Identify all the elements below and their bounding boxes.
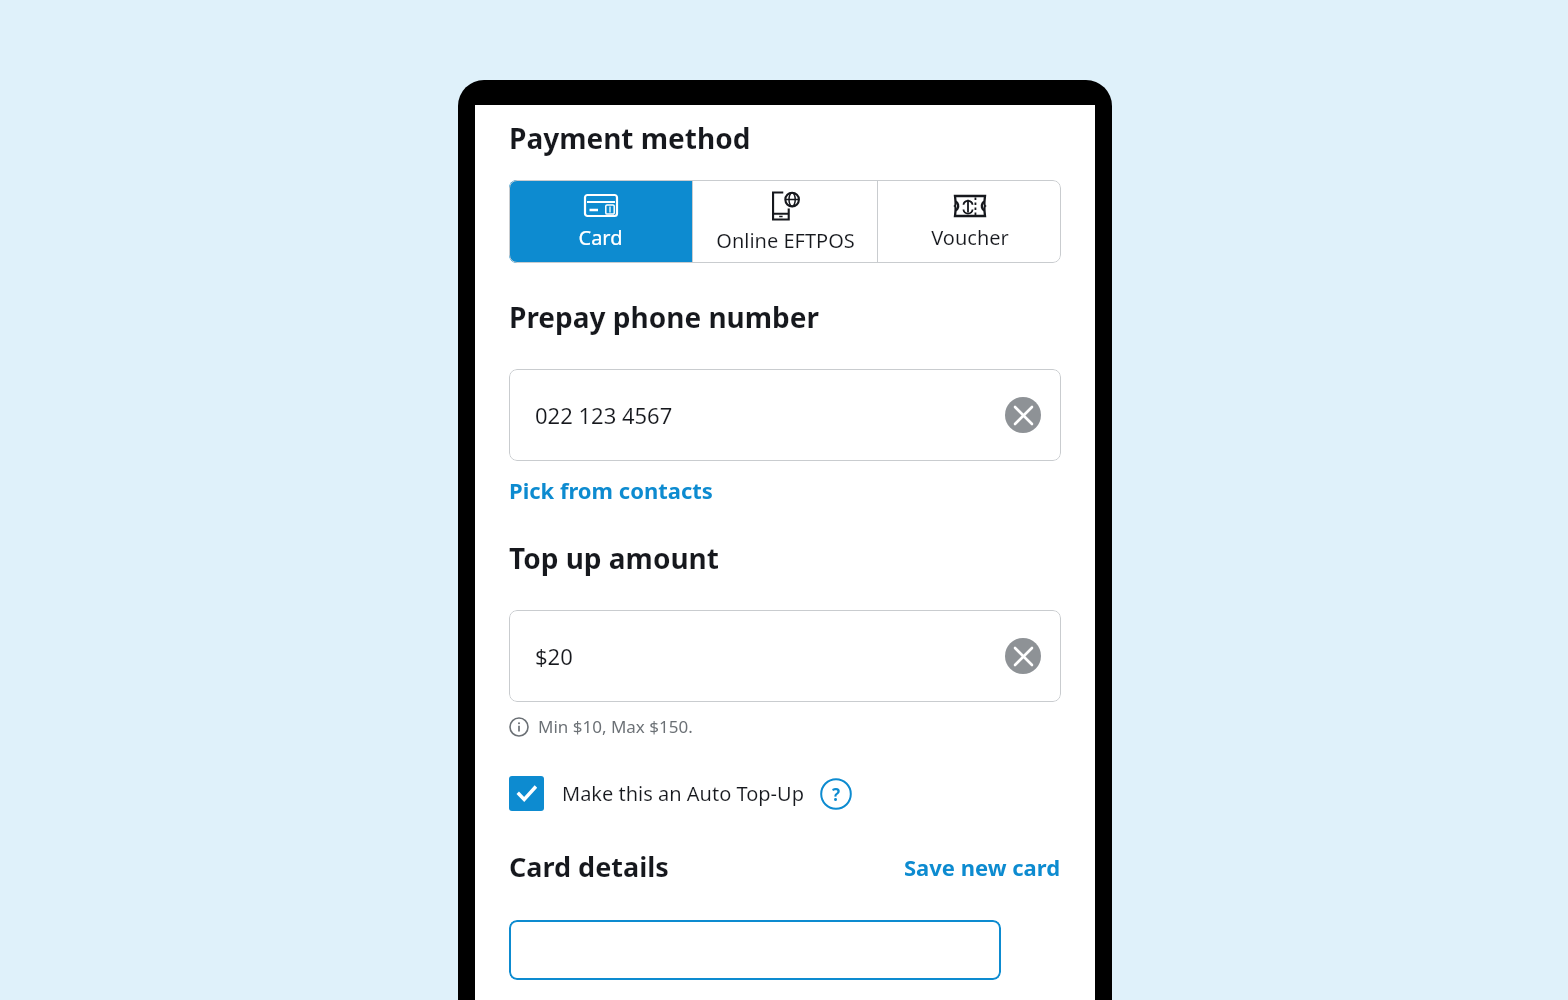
button[interactable]: $20	[509, 610, 1061, 702]
staticText: Card details	[509, 848, 669, 885]
staticText: Pick from contacts	[509, 475, 713, 505]
button[interactable]: Pick from contacts	[509, 475, 713, 505]
button[interactable]: Online EFTPOS	[693, 180, 877, 263]
button[interactable]: Clear	[1005, 397, 1041, 433]
button[interactable]: Save new card	[904, 852, 1061, 882]
button[interactable]: Help about Auto Top-Up	[820, 778, 852, 810]
staticText: Online EFTPOS	[716, 227, 855, 254]
button[interactable]: 022 123 4567	[509, 369, 1061, 461]
staticText: Save new card	[904, 852, 1061, 882]
staticText: Make this an Auto Top-Up	[562, 780, 804, 807]
button[interactable]: Voucher	[878, 180, 1061, 263]
button[interactable]	[509, 776, 544, 811]
staticText: Voucher	[931, 224, 1009, 251]
button[interactable]: Clear	[1005, 638, 1041, 674]
staticText: ?	[832, 783, 841, 806]
button[interactable]	[509, 920, 1001, 980]
staticText: Prepay phone number	[509, 298, 820, 336]
staticText: $20	[535, 641, 573, 671]
staticText: Min $10, Max $150.	[538, 715, 693, 738]
button[interactable]: Card	[509, 180, 692, 263]
staticText: Card	[578, 224, 623, 251]
staticText: Top up amount	[509, 539, 719, 577]
staticText: 022 123 4567	[535, 400, 673, 430]
staticText: Payment method	[509, 119, 751, 157]
